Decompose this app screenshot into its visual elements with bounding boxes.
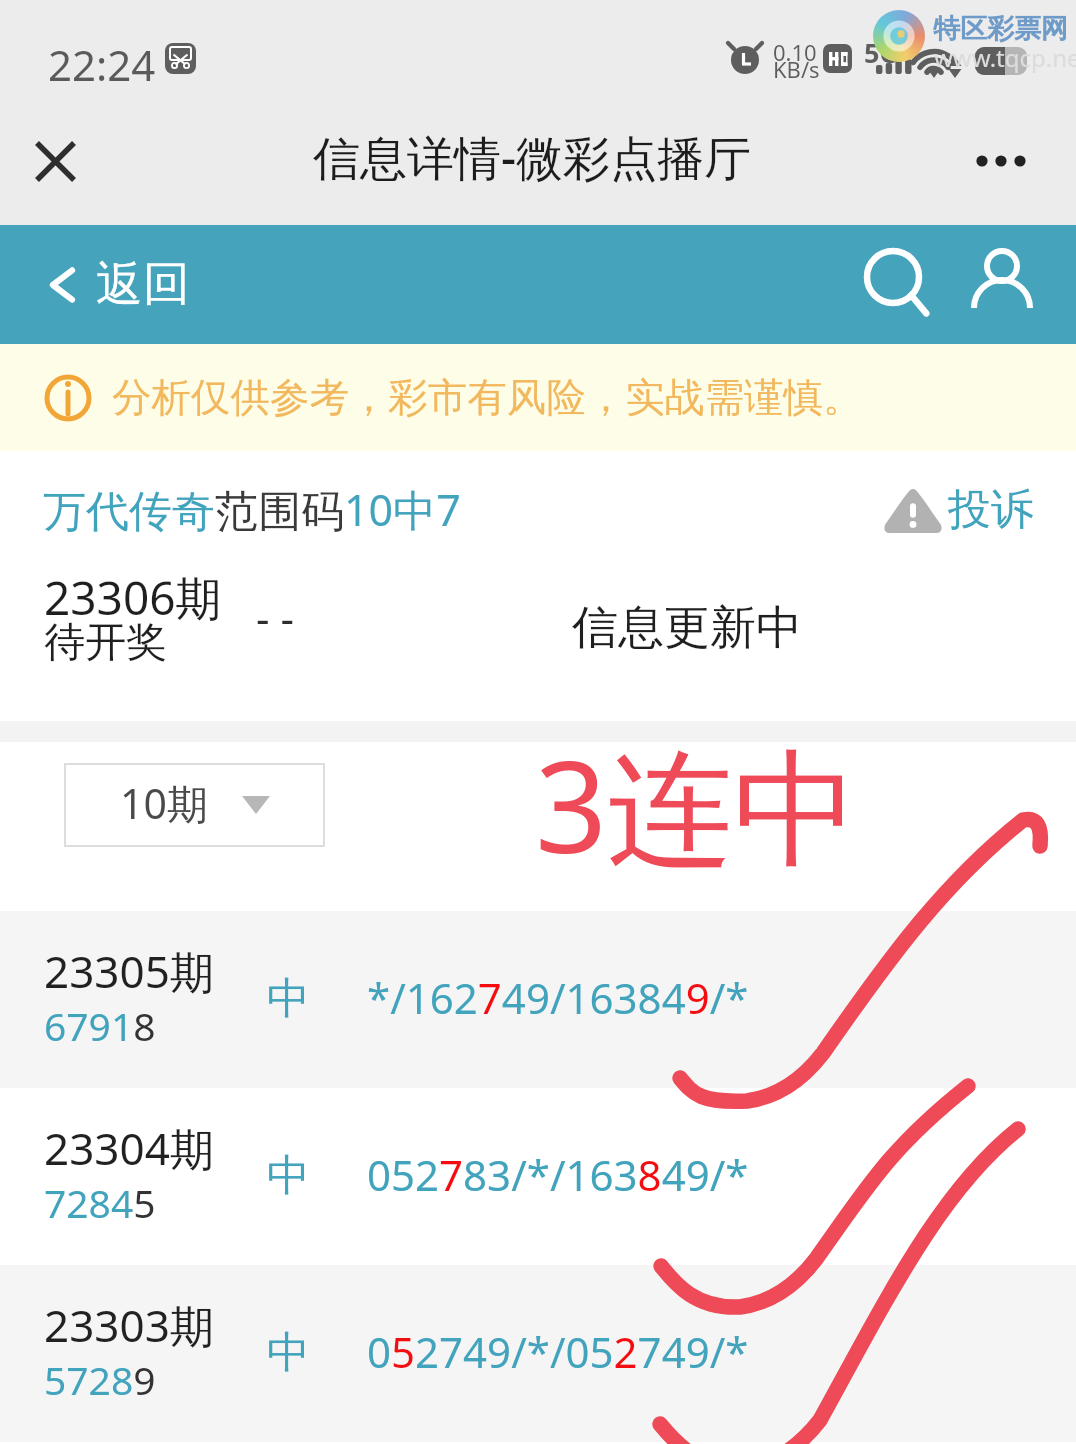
button[interactable]: 23305期 <box>0 911 1076 1088</box>
staticText: 分析仅供参考，彩市有风险，实战需谨慎。 <box>112 373 863 423</box>
staticText: 3连中 <box>535 718 860 887</box>
staticText: 23306期 <box>44 566 222 629</box>
button[interactable]: 23303期 <box>0 1265 1076 1442</box>
staticText: 信息详情-微彩点播厅 <box>313 125 752 189</box>
staticText: 052749/*/052749/* <box>367 1323 749 1380</box>
staticText: 57289 <box>44 1353 156 1406</box>
staticText: 中 <box>267 972 310 1026</box>
staticText: 22:24 <box>48 36 156 93</box>
button[interactable]: More options <box>965 125 1037 197</box>
staticText: KB/s <box>773 54 820 84</box>
staticText: 052783/*/163849/* <box>367 1146 749 1203</box>
staticText: 投诉 <box>948 483 1034 537</box>
staticText: www.tqcp.net <box>934 41 1076 74</box>
staticText: 23303期 <box>44 1295 214 1355</box>
staticText: 特区彩票网 <box>933 12 1068 46</box>
button[interactable]: Close <box>19 125 91 197</box>
staticText: 中 <box>267 1326 310 1380</box>
staticText: 中 <box>267 1149 310 1203</box>
staticText: */162749/163849/* <box>367 969 749 1026</box>
staticText: 5G <box>864 34 899 71</box>
button[interactable]: Search <box>850 222 936 308</box>
staticText: 10期 <box>120 775 208 831</box>
staticText: - - <box>256 589 294 646</box>
button[interactable]: 返回 <box>39 255 190 314</box>
staticText: 信息更新中 <box>572 599 802 657</box>
staticText: 万代传奇范围码10中7 <box>43 480 461 539</box>
staticText: 23304期 <box>44 1118 214 1178</box>
button[interactable]: Account <box>960 222 1046 308</box>
button[interactable]: 10期 <box>64 763 325 847</box>
staticText: 23305期 <box>44 941 214 1001</box>
button[interactable]: 投诉 <box>884 483 1034 537</box>
staticText: 返回 <box>96 255 190 314</box>
staticText: 72845 <box>44 1176 156 1229</box>
staticText: 0.10 <box>773 37 817 67</box>
staticText: 待开奖 <box>44 617 167 669</box>
button[interactable]: 23304期 <box>0 1088 1076 1265</box>
staticText: 67918 <box>44 999 156 1052</box>
